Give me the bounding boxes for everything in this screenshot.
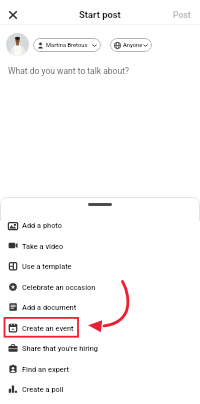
button[interactable]: Find an expert [0,359,200,379]
button[interactable]: Create an event [0,318,200,338]
button[interactable]: Use a template [0,256,200,276]
button[interactable]: Profile photo [6,33,29,56]
button[interactable]: Close [5,7,21,23]
staticText: What do you want to talk about? [8,66,129,76]
staticText: Find an expert [22,365,70,374]
button[interactable]: Post [173,10,191,20]
staticText: Post [173,10,191,20]
button[interactable]: Take a video [0,236,200,256]
button[interactable]: Anyone [110,38,152,52]
staticText: Add a photo [22,221,62,230]
button[interactable]: Celebrate an occasion [0,277,200,297]
button[interactable]: Add a photo [0,215,200,235]
staticText: Celebrate an occasion [22,283,96,292]
staticText: Anyone [123,42,142,49]
staticText: Add a document [22,303,77,312]
staticText: Create a poll [22,385,64,394]
staticText: Martina Bretous [46,42,91,49]
staticText: Share that you're hiring [22,344,98,353]
button[interactable]: Add a document [0,297,200,317]
button[interactable]: Martina Bretous [33,38,101,52]
staticText: Use a template [22,262,72,271]
button[interactable]: Share that you're hiring [0,338,200,358]
button[interactable]: Create a poll [0,379,200,399]
staticText: Create an event [22,324,74,333]
staticText: Take a video [22,242,64,251]
staticText: Start post [79,9,121,20]
